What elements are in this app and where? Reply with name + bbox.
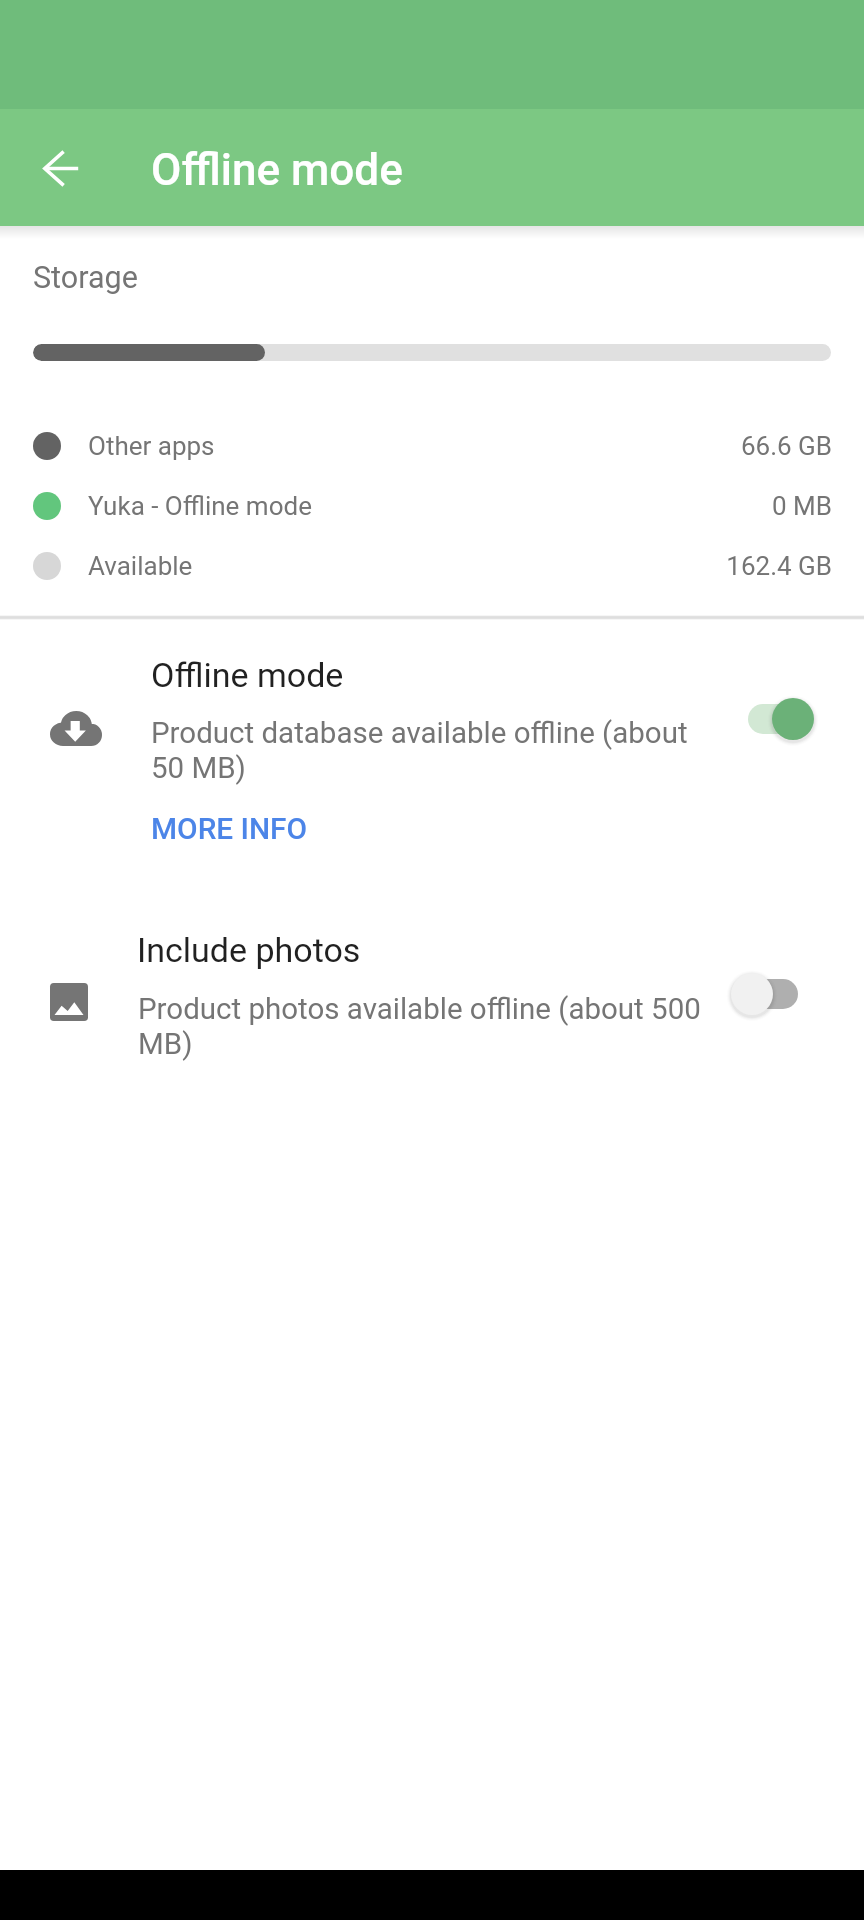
staticText: Other apps: [88, 431, 215, 461]
button[interactable]: Offline mode: [0, 625, 864, 887]
button[interactable]: Include photos: [0, 905, 864, 1105]
staticText: 66.6 GB: [740, 431, 832, 461]
staticText: Storage: [33, 260, 138, 296]
button[interactable]: Available: [0, 537, 864, 595]
staticText: Available: [88, 551, 193, 581]
button[interactable]: MORE INFO: [140, 802, 318, 856]
button[interactable]: Other apps: [0, 417, 864, 475]
staticText: 162.4 GB: [726, 551, 832, 581]
button[interactable]: Offline mode switch, on: [726, 669, 836, 769]
staticText: Offline mode: [151, 655, 344, 695]
button[interactable]: Yuka - Offline mode: [0, 477, 864, 535]
staticText: Yuka - Offline mode: [88, 491, 312, 521]
button[interactable]: Navigate up: [27, 134, 95, 202]
staticText: Offline mode: [151, 144, 403, 196]
staticText: 0 MB: [772, 491, 832, 521]
button[interactable]: Include photos switch, off: [714, 944, 824, 1044]
staticText: Product database available offline (abou…: [151, 716, 709, 785]
staticText: MORE INFO: [151, 811, 308, 846]
staticText: Include photos: [137, 930, 361, 970]
staticText: Product photos available offline (about …: [138, 992, 738, 1061]
